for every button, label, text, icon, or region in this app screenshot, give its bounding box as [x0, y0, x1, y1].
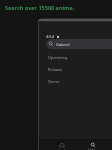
staticText: Genre	[48, 79, 60, 84]
staticText: 4:54	[46, 34, 54, 39]
button[interactable]: Upcoming	[39, 51, 112, 63]
button[interactable]: Home	[46, 139, 77, 150]
staticText: Gabriel	[56, 42, 70, 47]
button[interactable]: Gabriel	[46, 39, 112, 49]
staticText: Search over 15500 anime.	[5, 4, 75, 11]
button[interactable]: Search	[77, 139, 108, 150]
staticText: Search	[88, 148, 97, 150]
button[interactable]: Genre	[39, 75, 112, 87]
staticText: Home	[58, 148, 66, 150]
staticText: Release	[48, 67, 63, 72]
button[interactable]: Release	[39, 63, 112, 75]
staticText: Upcoming	[48, 55, 68, 60]
